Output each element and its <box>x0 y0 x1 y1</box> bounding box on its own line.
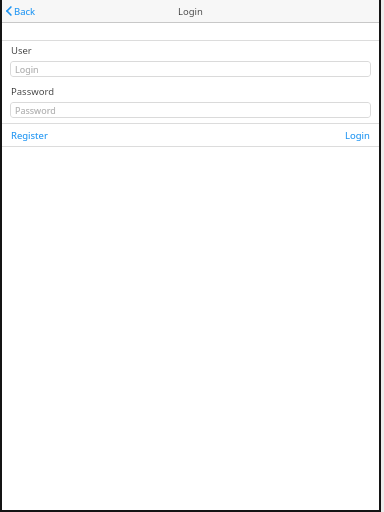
staticText: User <box>11 44 32 57</box>
button[interactable]: Register <box>11 124 48 146</box>
button[interactable]: Password <box>10 102 371 118</box>
staticText: Register <box>11 129 48 142</box>
staticText: Password <box>15 104 56 116</box>
button[interactable]: User <box>10 61 371 77</box>
staticText: Back <box>14 5 36 18</box>
staticText: Login <box>345 129 370 142</box>
staticText: Login <box>15 63 39 75</box>
staticText: Password <box>11 85 54 98</box>
other: Back <box>6 6 12 16</box>
button[interactable]: Back <box>6 0 36 22</box>
staticText: Login <box>178 5 203 18</box>
button[interactable]: Login <box>345 124 370 146</box>
